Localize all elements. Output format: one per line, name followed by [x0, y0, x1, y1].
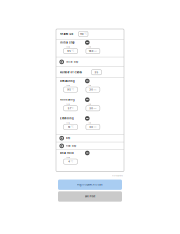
staticText: Initial Step [60, 41, 75, 44]
staticText: temp [66, 103, 70, 105]
staticText: 110 [80, 32, 84, 36]
staticText: °C [71, 107, 73, 109]
button[interactable]: Plug in OpenPCR to Start [58, 179, 122, 190]
button[interactable]: Remove Final Hold [85, 151, 90, 155]
staticText: Plug in OpenPCR to Start [77, 183, 103, 186]
staticText: 95 [67, 50, 71, 53]
staticText: Initial Step [66, 60, 78, 63]
staticText: 30 [89, 107, 93, 110]
staticText: sec [94, 50, 97, 52]
staticText: temp [66, 122, 70, 124]
staticText: Number of Cycles [59, 71, 81, 74]
staticText: sec [94, 107, 97, 109]
staticText: 30 [89, 125, 93, 129]
staticText: 30 [89, 88, 93, 91]
staticText: 95 [67, 88, 71, 91]
staticText: time [88, 84, 91, 86]
staticText: Save Preset [84, 195, 95, 198]
staticText: 57 [68, 107, 71, 110]
staticText: 4 [68, 160, 70, 163]
button[interactable]: Final Step [56, 142, 124, 149]
button[interactable]: Step [56, 135, 124, 142]
staticText: temp [66, 84, 70, 86]
staticText: sec [94, 89, 97, 91]
button[interactable]: more options [112, 174, 123, 177]
staticText: °C [71, 161, 73, 163]
staticText: Annealing [60, 98, 75, 101]
staticText: time [88, 103, 91, 105]
staticText: °C [71, 126, 73, 128]
staticText: time [88, 122, 91, 124]
staticText: temp [66, 156, 70, 158]
staticText: sec [94, 126, 97, 128]
staticText: °C [84, 33, 86, 35]
staticText: Step [66, 137, 70, 139]
staticText: Denaturing [60, 79, 75, 83]
button[interactable]: Initial Step [56, 57, 124, 66]
staticText: 35 [94, 71, 98, 74]
button[interactable]: Remove Annealing [85, 97, 90, 102]
staticText: temp [66, 46, 70, 48]
staticText: Extending [60, 117, 74, 120]
staticText: Final Step [66, 144, 76, 147]
staticText: °C [72, 50, 74, 52]
staticText: °C [72, 89, 74, 91]
button[interactable]: Save Preset [58, 191, 122, 202]
staticText: time [88, 46, 91, 48]
staticText: Heated Lid [59, 32, 73, 36]
button[interactable]: Remove Extending [85, 116, 90, 121]
button[interactable]: Remove Initial Step [85, 40, 90, 45]
button[interactable]: Remove Denaturing [85, 79, 90, 83]
staticText: 72 [68, 125, 71, 129]
staticText: 180 [89, 50, 94, 53]
staticText: more options [112, 174, 123, 177]
staticText: Final Hold [60, 151, 74, 155]
